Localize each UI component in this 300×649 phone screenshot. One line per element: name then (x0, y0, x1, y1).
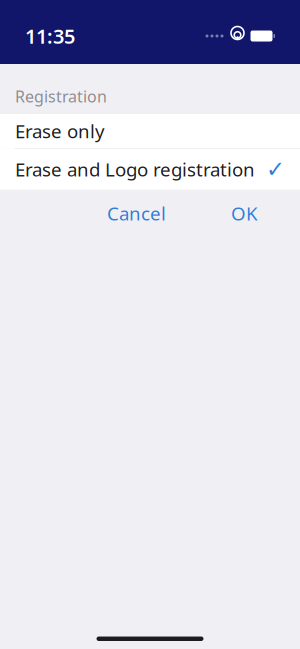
button[interactable]: OK (219, 193, 270, 234)
button[interactable]: Erase and Logo registration (0, 149, 300, 190)
button[interactable]: Cancel (95, 193, 178, 234)
staticText: OK (231, 201, 258, 226)
staticText: ✓ (266, 156, 285, 182)
staticText: Registration (15, 86, 107, 107)
staticText: Erase and Logo registration (15, 157, 255, 182)
staticText: 11:35 (25, 23, 75, 49)
staticText: Erase only (15, 119, 105, 143)
button[interactable]: Erase only (0, 114, 300, 148)
staticText: Cancel (107, 201, 166, 226)
